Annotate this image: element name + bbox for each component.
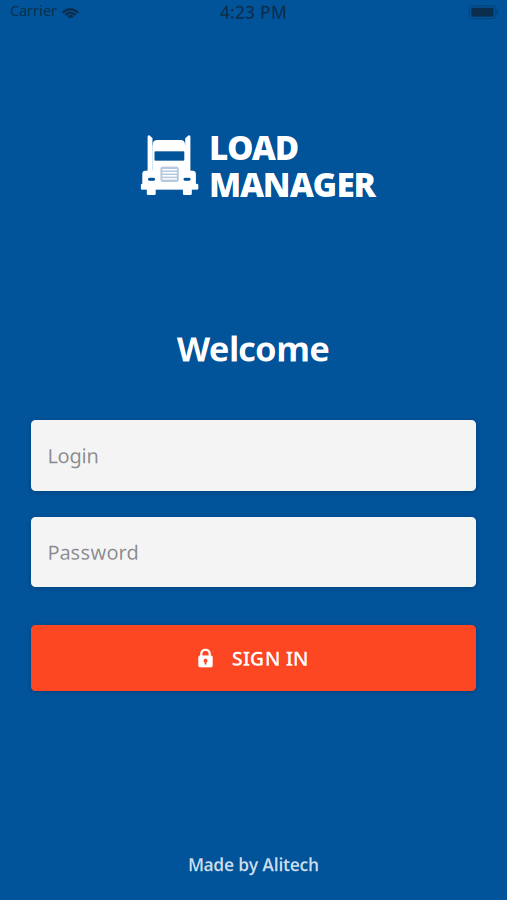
button[interactable]: Password xyxy=(31,517,476,587)
staticText: Login xyxy=(47,442,98,469)
button[interactable]: Login xyxy=(31,420,476,491)
staticText: Made by Alitech xyxy=(188,853,319,876)
staticText: LOAD xyxy=(209,125,299,169)
staticText: Password xyxy=(47,539,138,565)
staticText: MANAGER xyxy=(209,162,376,206)
staticText: SIGN IN xyxy=(232,645,309,671)
staticText: Welcome xyxy=(177,325,330,371)
staticText: Carrier xyxy=(10,0,57,20)
button[interactable]: SIGN IN xyxy=(31,625,476,691)
staticText: 4:23 PM xyxy=(220,0,287,23)
